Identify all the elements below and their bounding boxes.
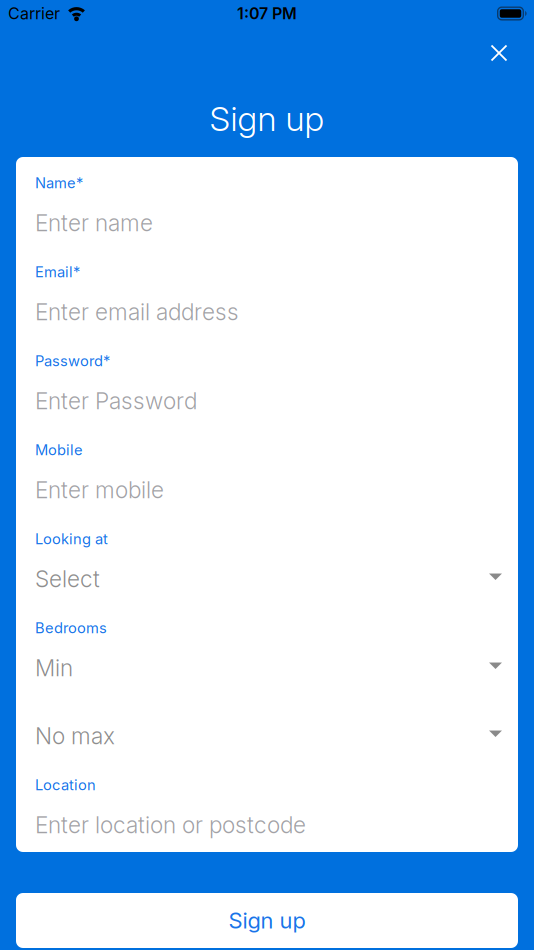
staticText: Location bbox=[35, 776, 96, 794]
button[interactable]: No max bbox=[35, 720, 502, 752]
staticText: Enter name bbox=[35, 209, 153, 237]
staticText: Enter Password bbox=[35, 387, 197, 415]
button[interactable]: Enter email address bbox=[35, 296, 502, 328]
button[interactable]: Select bbox=[35, 563, 502, 595]
staticText: Enter email address bbox=[35, 298, 239, 326]
button[interactable]: Enter Password bbox=[35, 385, 502, 417]
button[interactable]: Enter name bbox=[35, 207, 502, 239]
staticText: No max bbox=[35, 722, 115, 750]
staticText: Email* bbox=[35, 263, 80, 281]
button[interactable]: Min bbox=[35, 652, 502, 684]
staticText: Min bbox=[35, 654, 73, 682]
staticText: Enter mobile bbox=[35, 476, 164, 504]
staticText: Password* bbox=[35, 352, 110, 370]
staticText: Looking at bbox=[35, 530, 108, 548]
button[interactable]: Sign up bbox=[16, 893, 518, 948]
staticText: Bedrooms bbox=[35, 619, 107, 637]
staticText: Select bbox=[35, 565, 100, 593]
button[interactable]: Enter location or postcode bbox=[35, 809, 502, 841]
staticText: Name* bbox=[35, 174, 83, 192]
staticText: Sign up bbox=[228, 907, 305, 934]
staticText: Enter location or postcode bbox=[35, 811, 306, 839]
button[interactable]: Enter mobile bbox=[35, 474, 502, 506]
button[interactable]: Close bbox=[484, 38, 514, 68]
staticText: 1:07 PM bbox=[237, 4, 297, 23]
staticText: Sign up bbox=[209, 98, 324, 139]
staticText: Mobile bbox=[35, 441, 83, 459]
staticText: Carrier bbox=[8, 4, 60, 23]
